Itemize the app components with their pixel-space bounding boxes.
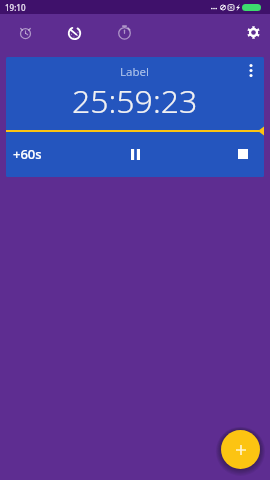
button[interactable]: Stop	[226, 137, 260, 171]
button[interactable]: +60s	[6, 136, 64, 172]
staticText: 19:10	[5, 2, 26, 13]
staticText: Label	[120, 64, 150, 80]
button[interactable]: Alarm	[11, 18, 39, 46]
staticText: 25:59:23	[72, 79, 198, 123]
button[interactable]: Add timer	[221, 430, 260, 469]
staticText: +60s	[13, 145, 42, 163]
button[interactable]: More options	[242, 61, 260, 79]
button[interactable]: Clock	[60, 18, 88, 46]
button[interactable]: Settings	[239, 18, 267, 46]
button[interactable]: Pause	[118, 137, 152, 171]
button[interactable]: Timer	[110, 18, 138, 46]
